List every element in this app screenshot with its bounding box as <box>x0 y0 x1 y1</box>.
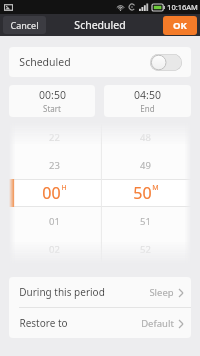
button[interactable]: 02 <box>9 235 191 263</box>
staticText: 00:50 <box>39 88 66 102</box>
staticText: 22 <box>49 131 60 144</box>
staticText: 02 <box>49 243 60 256</box>
staticText: 23 <box>49 159 60 172</box>
staticText: Start <box>43 103 61 114</box>
staticText: Default <box>141 317 174 330</box>
staticText: Sleep <box>149 286 174 299</box>
button[interactable]: Cancel <box>3 16 46 34</box>
staticText: 48 <box>140 131 151 144</box>
staticText: 00 <box>42 182 61 204</box>
button[interactable]: 00:50 <box>9 85 95 117</box>
button[interactable]: 23 <box>9 151 191 179</box>
staticText: 49 <box>140 159 151 172</box>
staticText: H <box>61 183 67 193</box>
staticText: 51 <box>140 215 151 228</box>
button[interactable]: 04:50 <box>104 85 191 117</box>
staticText: End <box>140 103 155 114</box>
button[interactable]: Restore to <box>9 308 191 338</box>
staticText: OK <box>173 19 187 32</box>
staticText: During this period <box>19 285 105 299</box>
staticText: 10:16AM <box>167 2 198 12</box>
staticText: M <box>152 183 159 193</box>
staticText: Cancel <box>10 19 39 31</box>
staticText: Scheduled <box>74 18 126 32</box>
staticText: 01 <box>49 215 60 228</box>
button[interactable]: During this period <box>9 277 191 307</box>
staticText: 04:50 <box>134 88 161 102</box>
staticText: Restore to <box>19 316 68 330</box>
button[interactable]: Scheduled toggle, off <box>150 54 182 71</box>
button[interactable]: 00 <box>9 179 191 207</box>
staticText: Scheduled <box>19 55 71 69</box>
staticText: 52 <box>140 243 151 256</box>
button[interactable]: 22 <box>9 123 191 151</box>
button[interactable]: 01 <box>9 207 191 235</box>
staticText: 50 <box>133 182 152 204</box>
button[interactable]: OK <box>163 16 197 35</box>
button[interactable]: Scheduled <box>9 47 191 77</box>
